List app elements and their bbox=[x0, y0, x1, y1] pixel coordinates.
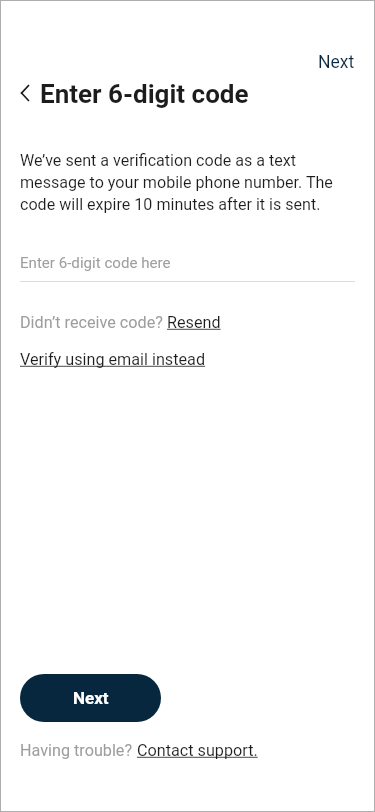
button[interactable]: Back bbox=[10, 78, 40, 108]
staticText: Contact support. bbox=[137, 741, 258, 760]
staticText: Verify using email instead bbox=[20, 350, 206, 369]
staticText: We’ve sent a verification code as a text… bbox=[20, 151, 354, 214]
button[interactable]: Verify using email instead bbox=[20, 350, 206, 369]
staticText: Enter 6-digit code bbox=[40, 79, 249, 109]
staticText: Resend bbox=[167, 313, 221, 332]
button[interactable]: Contact support. bbox=[137, 741, 258, 760]
button[interactable]: Enter 6-digit code here bbox=[20, 246, 355, 280]
staticText: Having trouble? bbox=[20, 741, 137, 760]
staticText: Enter 6-digit code here bbox=[20, 254, 171, 272]
button[interactable]: Next bbox=[306, 45, 367, 79]
staticText: Next bbox=[318, 52, 355, 73]
button[interactable]: Next bbox=[20, 674, 161, 722]
button[interactable]: Resend bbox=[167, 313, 221, 332]
staticText: Next bbox=[73, 688, 109, 708]
staticText: Didn’t receive code? bbox=[20, 313, 167, 332]
